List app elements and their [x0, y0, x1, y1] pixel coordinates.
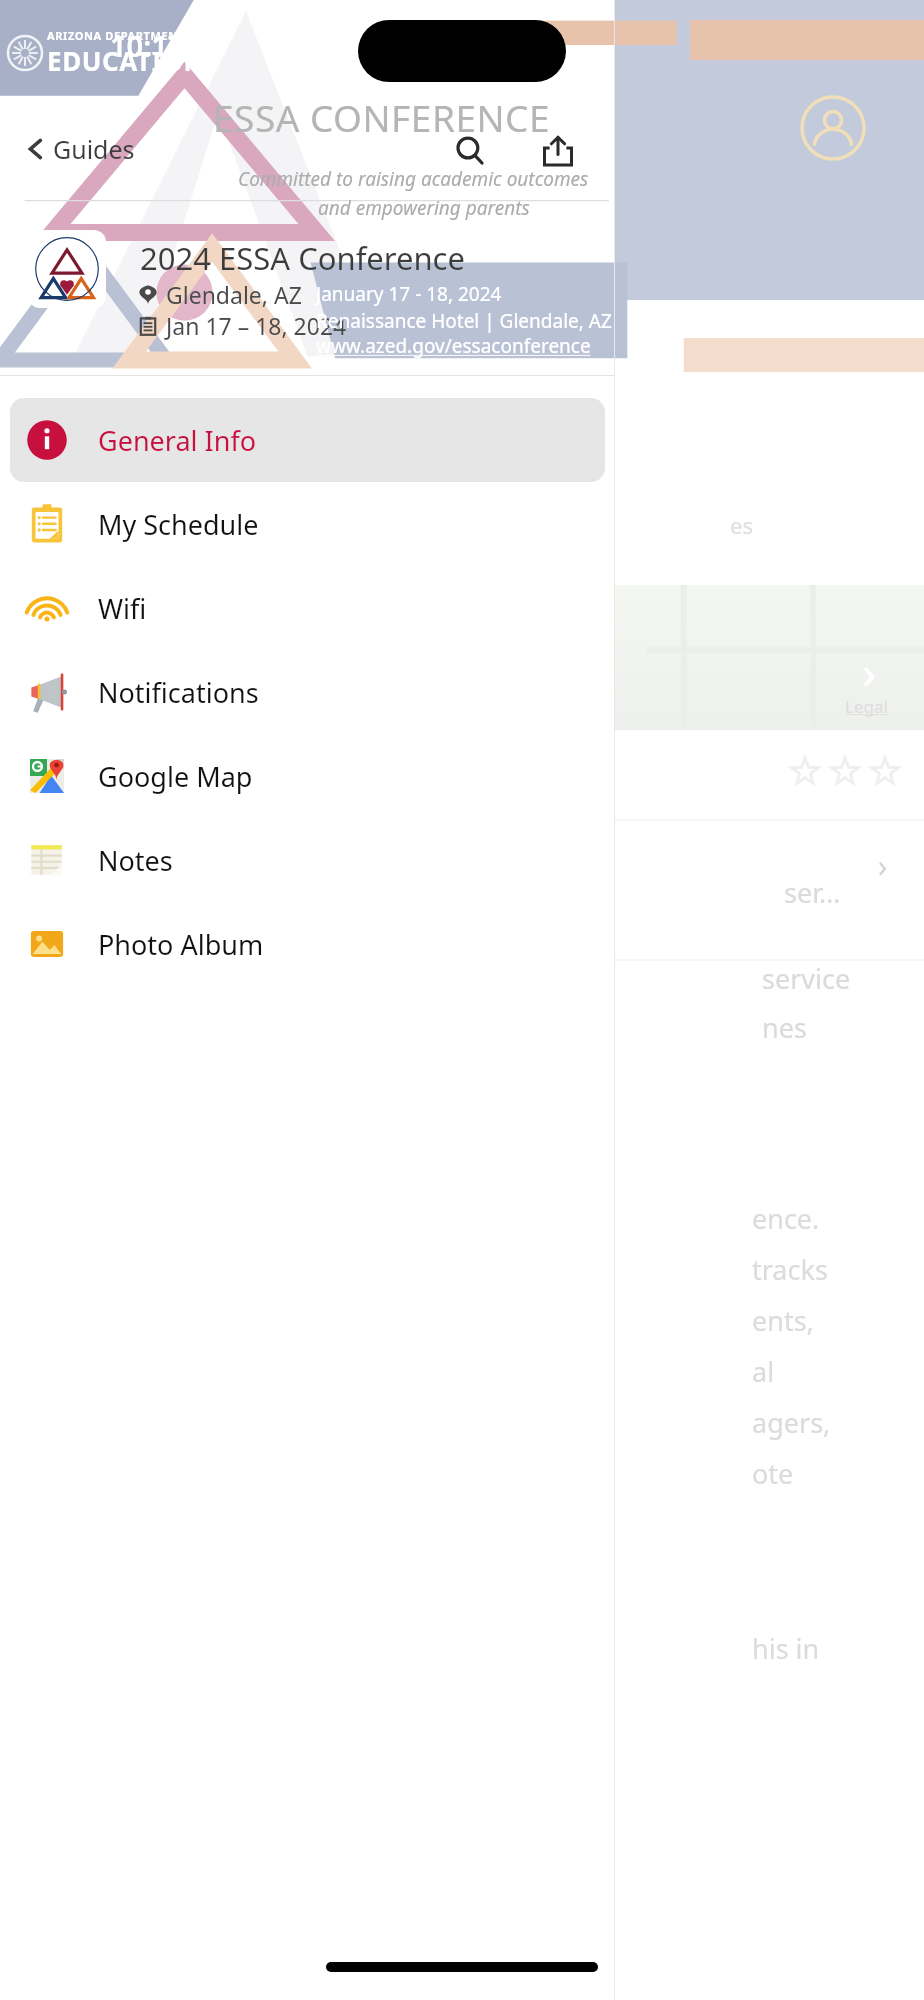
staticText: www.azed.gov/essaconference — [316, 333, 591, 359]
button[interactable]: General Info — [10, 398, 605, 482]
staticText: Notes — [98, 842, 173, 879]
button[interactable]: Guides — [22, 128, 139, 170]
staticText: › — [878, 845, 888, 886]
staticText: ote — [752, 1455, 794, 1492]
button[interactable]: Google Map — [10, 734, 605, 818]
staticText: his in — [752, 1630, 820, 1667]
staticText: Notifications — [98, 674, 259, 711]
staticText: tracks — [752, 1251, 828, 1288]
staticText: 2024 ESSA Conference — [140, 237, 465, 279]
staticText: agers, — [752, 1404, 831, 1441]
staticText: Renaissance Hotel | Glendale, AZ — [316, 308, 612, 334]
staticText: Committed to raising academic outcomes — [238, 166, 589, 192]
button[interactable]: Notifications — [10, 650, 605, 734]
staticText: al — [752, 1353, 775, 1390]
staticText: Photo Album — [98, 926, 264, 963]
staticText: ents, — [752, 1302, 814, 1339]
staticText: service — [762, 960, 851, 997]
staticText: ARIZONA DEPARTMENT OF — [47, 28, 205, 43]
button[interactable]: Notes — [10, 818, 605, 902]
staticText: Legal — [845, 695, 888, 718]
staticText: Wifi — [98, 590, 147, 627]
staticText: ence. — [752, 1200, 820, 1237]
staticText: Guides — [53, 132, 135, 166]
button[interactable]: Wifi — [10, 566, 605, 650]
staticText: January 17 - 18, 2024 — [316, 281, 502, 307]
staticText: ESSA CONFERENCE — [213, 92, 551, 142]
button[interactable]: Share — [535, 128, 581, 174]
staticText: My Schedule — [98, 506, 259, 543]
staticText: and empowering parents — [318, 195, 530, 221]
staticText: Google Map — [98, 758, 253, 795]
button[interactable]: Photo Album — [10, 902, 605, 986]
staticText: Jan 17 – 18, 2024 — [166, 310, 347, 341]
staticText: Glendale, AZ — [166, 279, 302, 310]
staticText: 10:17 — [110, 26, 185, 65]
staticText: › — [862, 640, 877, 703]
staticText: ser… — [784, 874, 841, 911]
staticText: es — [730, 510, 753, 540]
button[interactable]: Search — [447, 128, 493, 174]
staticText: nes — [762, 1009, 807, 1046]
button[interactable]: My Schedule — [10, 482, 605, 566]
staticText: EDUCATION — [47, 43, 206, 78]
staticText: General Info — [98, 422, 257, 459]
